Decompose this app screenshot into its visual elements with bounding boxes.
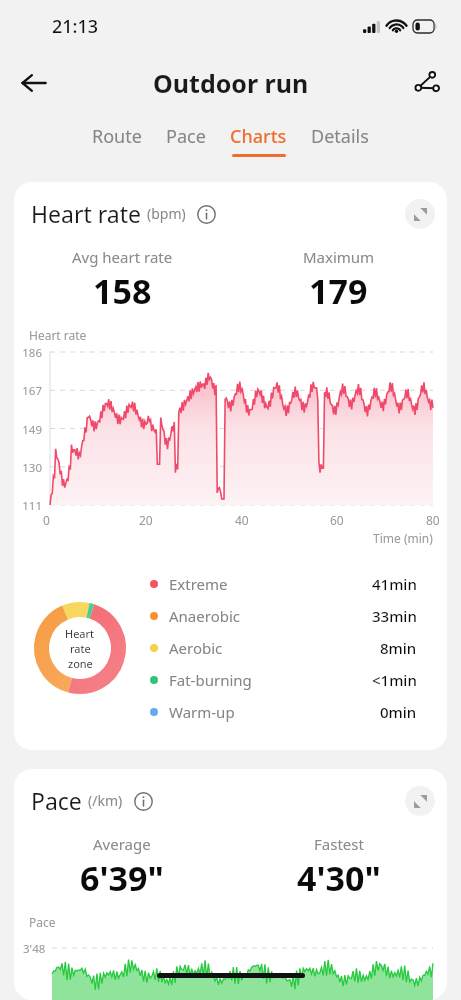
staticText: Pace bbox=[29, 914, 56, 930]
button[interactable]: Aerobic bbox=[150, 632, 429, 664]
staticText: rate bbox=[70, 641, 91, 656]
staticText: 60 bbox=[330, 512, 344, 528]
staticText: 21:13 bbox=[52, 14, 99, 39]
button[interactable]: Info about Heart rate bbox=[193, 201, 219, 227]
staticText: 80 bbox=[426, 512, 440, 528]
staticText: 179 bbox=[309, 268, 368, 314]
staticText: zone bbox=[68, 656, 93, 671]
staticText: Extreme bbox=[169, 574, 372, 594]
staticText: (bpm) bbox=[147, 204, 186, 223]
staticText: Charts bbox=[230, 124, 287, 149]
staticText: 8min bbox=[380, 638, 417, 658]
staticText: 40 bbox=[235, 512, 249, 528]
button[interactable]: Expand chart bbox=[405, 786, 435, 816]
staticText: Heart rate bbox=[29, 327, 87, 343]
button[interactable]: Heart rate bbox=[14, 182, 447, 750]
staticText: Average bbox=[93, 834, 151, 854]
staticText: (/km) bbox=[88, 791, 123, 810]
staticText: 111 bbox=[22, 498, 42, 514]
staticText: 33min bbox=[372, 606, 417, 626]
staticText: Details bbox=[311, 124, 369, 149]
staticText: Time (min) bbox=[373, 530, 433, 546]
staticText: 186 bbox=[22, 345, 42, 361]
staticText: Anaerobic bbox=[169, 606, 372, 626]
staticText: 167 bbox=[22, 383, 42, 399]
button[interactable]: Charts bbox=[218, 120, 299, 161]
staticText: Pace bbox=[31, 785, 82, 816]
staticText: 41min bbox=[372, 574, 417, 594]
staticText: Heart bbox=[65, 626, 95, 641]
staticText: 158 bbox=[93, 268, 152, 314]
button[interactable]: Warm-up bbox=[150, 696, 429, 728]
button[interactable]: Fat-burning bbox=[150, 664, 429, 696]
staticText: 0min bbox=[380, 702, 417, 722]
staticText: Avg heart rate bbox=[72, 247, 173, 267]
staticText: Fat-burning bbox=[169, 670, 372, 690]
staticText: 3'48 bbox=[23, 941, 46, 957]
button[interactable]: Extreme bbox=[150, 568, 429, 600]
staticText: 0 bbox=[43, 512, 50, 528]
staticText: Warm-up bbox=[169, 702, 380, 722]
button[interactable]: Details bbox=[299, 120, 381, 161]
staticText: Pace bbox=[166, 124, 206, 149]
staticText: 130 bbox=[22, 460, 42, 476]
staticText: 6'39" bbox=[80, 855, 164, 901]
staticText: <1min bbox=[372, 670, 417, 690]
button[interactable]: Pace bbox=[14, 769, 447, 1000]
button[interactable]: Share bbox=[403, 59, 451, 107]
staticText: Heart rate bbox=[31, 198, 141, 229]
staticText: Route bbox=[92, 124, 142, 149]
staticText: Outdoor run bbox=[153, 66, 309, 100]
button[interactable]: Expand chart bbox=[405, 199, 435, 229]
staticText: 20 bbox=[139, 512, 153, 528]
staticText: Maximum bbox=[303, 247, 375, 267]
button[interactable]: Pace bbox=[154, 120, 218, 161]
staticText: Aerobic bbox=[169, 638, 380, 658]
staticText: Fastest bbox=[314, 834, 364, 854]
button[interactable]: Anaerobic bbox=[150, 600, 429, 632]
staticText: 4'30" bbox=[297, 855, 381, 901]
staticText: 149 bbox=[22, 422, 42, 438]
button[interactable]: Route bbox=[80, 120, 154, 161]
button[interactable]: Info about Pace bbox=[130, 788, 156, 814]
button[interactable]: Back bbox=[8, 57, 60, 109]
